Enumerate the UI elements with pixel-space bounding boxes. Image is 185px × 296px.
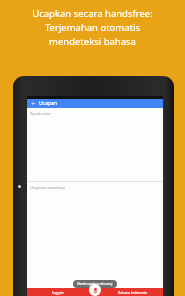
button[interactable]: Inggris — [27, 288, 88, 296]
button[interactable]: Back — [30, 100, 37, 107]
button[interactable]: Mendengarkan sekarang — [73, 280, 117, 288]
staticText: Bahasa Indonesia — [118, 290, 148, 295]
staticText: Mendengarkan sekarang — [77, 282, 113, 286]
staticText: Ucapan — [39, 100, 58, 107]
staticText: Ucapkan sekarang — [30, 185, 65, 190]
button[interactable]: Bahasa Indonesia — [102, 288, 163, 296]
staticText: Terjemahan otomatis — [0, 21, 185, 34]
staticText: mendeteksi bahasa — [0, 35, 185, 48]
button[interactable]: Microphone — [89, 284, 101, 296]
staticText: Ucapkan secara handsfree: — [0, 7, 185, 20]
staticText: Inggris — [52, 290, 64, 295]
button[interactable]: Back — [27, 99, 163, 108]
staticText: Speak now — [30, 111, 51, 116]
